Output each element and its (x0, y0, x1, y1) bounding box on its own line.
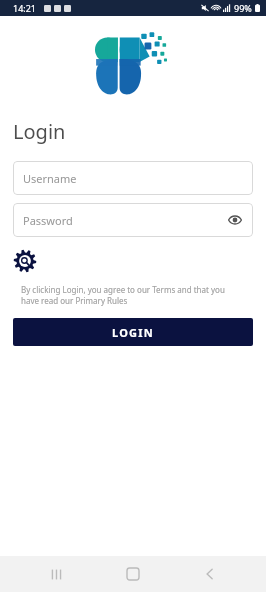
button[interactable]: Username (13, 161, 253, 195)
staticText: Login (13, 118, 66, 145)
button[interactable]: Settings (13, 249, 37, 273)
button[interactable]: Recent apps (37, 556, 77, 592)
staticText: 99% (234, 2, 252, 14)
button[interactable]: Show password (226, 211, 244, 229)
button[interactable]: Home (113, 556, 153, 592)
button[interactable]: LOGIN (13, 318, 253, 346)
staticText: Password (23, 213, 73, 228)
staticText: By clicking Login, you agree to our Term… (21, 284, 240, 306)
staticText: LOGIN (112, 325, 154, 340)
button[interactable]: Back (190, 556, 230, 592)
staticText: 14:21 (13, 2, 37, 14)
staticText: Username (23, 171, 77, 186)
button[interactable]: Password (13, 203, 253, 237)
